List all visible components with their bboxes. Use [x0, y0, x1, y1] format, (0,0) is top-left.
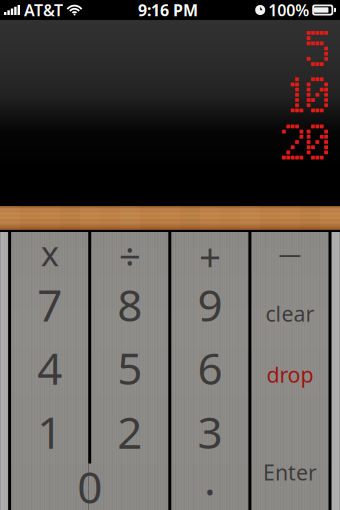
staticText: — [278, 238, 301, 268]
button[interactable]: clear [251, 280, 329, 343]
staticText: clear [265, 299, 314, 328]
button[interactable]: Enter [251, 407, 329, 510]
staticText: 5 [117, 338, 142, 397]
button[interactable]: x [11, 232, 88, 280]
staticText: 9 [197, 275, 222, 334]
staticText: 9:16 PM [138, 0, 198, 21]
staticText: 2 [117, 403, 142, 461]
button[interactable]: 2 [91, 407, 168, 471]
staticText: drop [266, 360, 313, 389]
button[interactable]: drop [251, 343, 329, 407]
staticText: 7 [37, 275, 62, 334]
button[interactable]: — [251, 232, 329, 280]
staticText: 100% [268, 0, 309, 21]
staticText: 0 [77, 457, 102, 510]
staticText: 6 [197, 338, 222, 397]
staticText: 3 [197, 403, 222, 461]
staticText: AT&T [24, 0, 63, 21]
staticText: x [41, 230, 59, 276]
button[interactable]: 7 [11, 280, 88, 343]
button[interactable]: 6 [171, 343, 248, 407]
button[interactable]: + [171, 232, 248, 280]
button[interactable]: 0 [11, 471, 168, 510]
button[interactable]: ÷ [91, 232, 168, 280]
staticText: + [199, 230, 221, 282]
staticText: 4 [37, 338, 62, 397]
staticText: 1 [37, 403, 62, 461]
button[interactable]: 1 [11, 407, 88, 471]
button[interactable]: 4 [11, 343, 88, 407]
staticText: Enter [263, 458, 317, 486]
staticText: ÷ [119, 230, 141, 281]
button[interactable]: . [171, 471, 248, 510]
button[interactable]: 5 [91, 343, 168, 407]
button[interactable]: 3 [171, 407, 248, 471]
staticText: . [204, 449, 216, 508]
button[interactable]: 8 [91, 280, 168, 343]
staticText: 8 [117, 275, 142, 334]
button[interactable]: 9 [171, 280, 248, 343]
